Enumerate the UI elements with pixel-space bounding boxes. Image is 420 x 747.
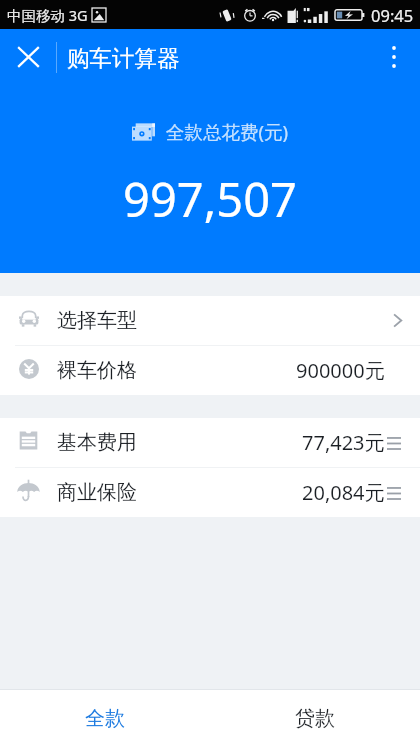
staticText: 20,084元 — [302, 479, 385, 506]
staticText: 09:45 — [371, 4, 414, 26]
staticText: 裸车价格 — [57, 358, 137, 383]
button[interactable]: More options — [368, 29, 420, 85]
button[interactable]: 裸车价格 — [0, 346, 420, 395]
button[interactable]: Details — [387, 434, 405, 452]
button[interactable]: 全款 — [0, 690, 210, 747]
staticText: 全款总花费(元) — [166, 119, 289, 144]
staticText: 997,507 — [123, 167, 297, 231]
staticText: 商业保险 — [57, 480, 137, 505]
button[interactable]: Details — [387, 484, 405, 502]
staticText: 购车计算器 — [67, 44, 180, 72]
staticText: 中国移动 3G — [7, 5, 88, 25]
button[interactable]: 基本费用 — [0, 418, 420, 467]
staticText: 选择车型 — [57, 308, 137, 333]
button[interactable]: 商业保险 — [0, 468, 420, 517]
button[interactable]: 贷款 — [210, 690, 420, 747]
staticText: 全款 — [85, 706, 125, 731]
button[interactable]: Close — [0, 29, 56, 85]
staticText: 基本费用 — [57, 430, 137, 455]
staticText: 贷款 — [295, 706, 335, 731]
staticText: 900000元 — [296, 357, 385, 384]
staticText: 77,423元 — [302, 429, 385, 456]
button[interactable]: 选择车型 — [0, 296, 420, 345]
